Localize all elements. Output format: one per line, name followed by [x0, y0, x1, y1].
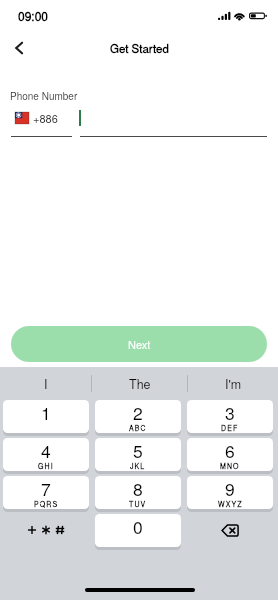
- staticText: 3: [225, 400, 235, 425]
- button[interactable]: Backspace: [187, 514, 273, 546]
- staticText: 8: [133, 476, 143, 501]
- button[interactable]: I'm: [188, 368, 278, 399]
- button[interactable]: 7: [3, 476, 89, 509]
- button[interactable]: Symbols plus asterisk hash: [3, 514, 89, 546]
- button[interactable]: 5: [95, 438, 181, 471]
- staticText: DEF: [221, 423, 239, 433]
- button[interactable]: 6: [187, 438, 273, 471]
- button[interactable]: 3: [187, 400, 273, 433]
- staticText: GHI: [38, 461, 54, 471]
- staticText: WXYZ: [218, 499, 243, 509]
- button[interactable]: 8: [95, 476, 181, 509]
- staticText: Phone Number: [10, 89, 78, 103]
- staticText: PQRS: [34, 499, 59, 509]
- staticText: Next: [128, 336, 151, 352]
- button[interactable]: The: [92, 368, 187, 399]
- button[interactable]: Back: [5, 34, 33, 62]
- staticText: 5: [133, 438, 143, 463]
- staticText: 4: [41, 438, 51, 463]
- button[interactable]: 1: [3, 400, 89, 433]
- staticText: 6: [225, 438, 235, 463]
- staticText: 2: [133, 400, 143, 425]
- staticText: TUV: [129, 499, 147, 509]
- button[interactable]: 9: [187, 476, 273, 509]
- staticText: 9: [225, 476, 235, 501]
- staticText: 09:00: [18, 7, 49, 24]
- button[interactable]: I: [0, 368, 91, 399]
- button[interactable]: Next: [11, 326, 267, 362]
- staticText: 7: [41, 476, 51, 501]
- staticText: 1: [41, 400, 51, 425]
- staticText: MNO: [220, 461, 240, 471]
- staticText: Get Started: [110, 40, 169, 56]
- staticText: JKL: [130, 461, 146, 471]
- staticText: ABC: [129, 423, 147, 433]
- button[interactable]: 4: [3, 438, 89, 471]
- button[interactable]: 0: [95, 514, 181, 547]
- staticText: 0: [133, 514, 143, 539]
- button[interactable]: 2: [95, 400, 181, 433]
- staticText: +886: [33, 110, 58, 126]
